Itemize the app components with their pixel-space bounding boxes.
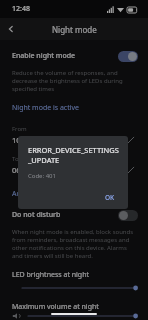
- staticText: From: [12, 125, 27, 133]
- staticText: Night mode is active: [12, 103, 80, 113]
- staticText: Enable night mode: [12, 51, 76, 61]
- button[interactable]: From: [0, 125, 148, 145]
- staticText: Reduce the volume of responses, and decr…: [12, 69, 123, 93]
- staticText: OK: [105, 193, 115, 202]
- button[interactable]: To: [0, 155, 148, 175]
- staticText: To: [12, 155, 19, 163]
- button[interactable]: Do not disturb: [0, 205, 148, 225]
- staticText: 06:00 AM: [12, 165, 45, 175]
- staticText: Maximum volume at night: [12, 302, 99, 312]
- staticText: Night mode: [52, 24, 97, 35]
- button[interactable]: Back: [0, 18, 22, 40]
- other: Edit: [126, 165, 136, 175]
- staticText: Do not disturb: [12, 210, 61, 220]
- staticText: LED brightness at night: [12, 270, 90, 280]
- button[interactable]: [28, 312, 138, 320]
- staticText: 12:48: [12, 4, 30, 14]
- staticText: Additional settings: [12, 189, 74, 199]
- other: Volume: [12, 312, 22, 320]
- staticText: When night mode is enabled, block sounds…: [12, 228, 134, 260]
- staticText: 10:00 PM: [12, 135, 45, 145]
- button[interactable]: OK: [100, 191, 120, 204]
- staticText: ERROR_DEVICE_SETTINGS_UPDATE: [28, 145, 120, 165]
- button[interactable]: [22, 282, 138, 294]
- staticText: Code: 401: [28, 172, 56, 180]
- other: Edit: [126, 135, 136, 145]
- button[interactable]: Enable night mode: [0, 46, 148, 66]
